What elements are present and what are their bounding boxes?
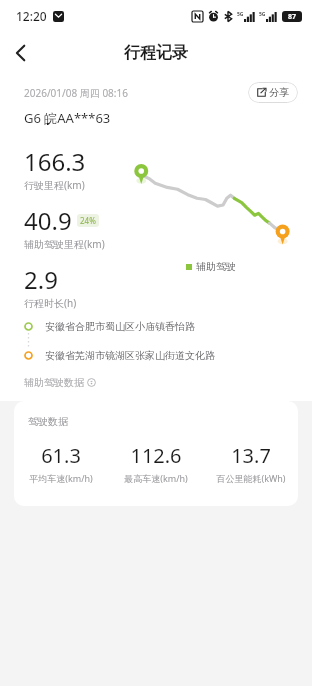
staticText: 辅助驾驶里程(km)	[24, 237, 105, 251]
button[interactable]: 分享	[248, 82, 298, 103]
button[interactable]: 驾驶数据	[14, 401, 298, 506]
staticText: 166.3	[24, 145, 86, 178]
staticText: 辅助驾驶	[196, 260, 236, 273]
staticText: 24%	[80, 215, 96, 226]
staticText: 87	[288, 12, 297, 22]
staticText: 2.9	[24, 263, 58, 296]
staticText: 安徽省芜湖市镜湖区张家山街道文化路	[45, 349, 215, 362]
staticText: 分享	[269, 86, 289, 99]
button[interactable]: Back	[0, 33, 40, 73]
staticText: 2026/01/08 周四 08:16	[24, 86, 128, 100]
staticText: 40.9	[24, 204, 72, 237]
staticText: 行程记录	[124, 43, 188, 63]
staticText: 行驶里程(km)	[24, 178, 85, 192]
staticText: 61.3	[41, 442, 81, 469]
staticText: 安徽省合肥市蜀山区小庙镇香怡路	[45, 320, 195, 333]
staticText: 行程时长(h)	[24, 296, 77, 310]
staticText: 辅助驾驶数据	[24, 376, 84, 389]
staticText: 5G	[237, 11, 244, 18]
staticText: 平均车速(km/h)	[29, 472, 93, 484]
staticText: 12:20	[16, 8, 47, 24]
staticText: 驾驶数据	[28, 415, 68, 428]
staticText: 112.6	[130, 442, 182, 469]
staticText: G6 皖AA***63	[24, 109, 111, 127]
staticText: 百公里能耗(kWh)	[216, 472, 286, 484]
other: Info	[87, 378, 96, 387]
staticText: 最高车速(km/h)	[124, 472, 188, 484]
button[interactable]: 辅助驾驶数据	[24, 376, 96, 389]
staticText: 13.7	[231, 442, 271, 469]
staticText: 5G	[259, 11, 266, 18]
